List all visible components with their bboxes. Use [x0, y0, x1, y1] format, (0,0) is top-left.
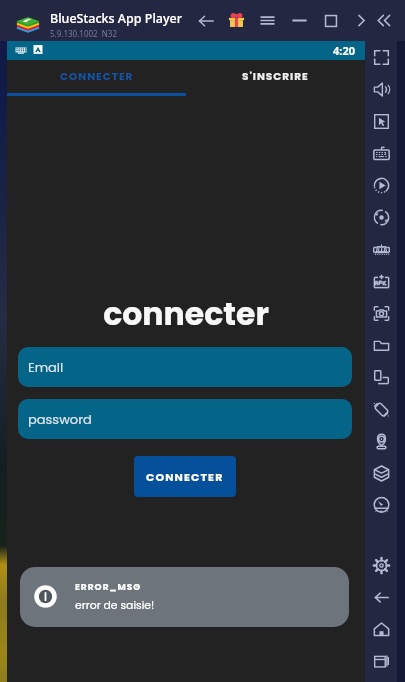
button[interactable]: Email: [18, 347, 352, 387]
staticText: 4:20: [333, 43, 355, 58]
staticText: connecter: [103, 292, 269, 336]
staticText: password: [28, 410, 92, 428]
staticText: error de saisie!: [75, 598, 155, 613]
button[interactable]: Maximize: [316, 0, 346, 41]
button[interactable]: S'INSCRIRE: [186, 60, 365, 93]
button[interactable]: Fullscreen: [365, 41, 397, 73]
button[interactable]: Back: [365, 581, 397, 613]
staticText: CONNECTER: [146, 469, 224, 484]
button[interactable]: Layers: [365, 457, 397, 489]
button[interactable]: Rotate: [365, 361, 397, 393]
button[interactable]: Rewards: [221, 0, 251, 41]
button[interactable]: Shake: [365, 393, 397, 425]
button[interactable]: Forward: [346, 0, 376, 41]
button[interactable]: Screenshot: [365, 297, 397, 329]
button[interactable]: Media manager: [365, 329, 397, 361]
button[interactable]: Collapse: [367, 0, 397, 41]
staticText: CONNECTER: [60, 69, 134, 84]
button[interactable]: Macro: [365, 169, 397, 201]
button[interactable]: Multi instance: [365, 233, 397, 265]
button[interactable]: Minimize: [284, 0, 314, 41]
button[interactable]: Recents: [365, 645, 397, 677]
button[interactable]: password: [18, 399, 352, 439]
button[interactable]: Back: [191, 0, 221, 41]
button[interactable]: CONNECTER: [134, 456, 236, 497]
button[interactable]: Settings: [365, 549, 397, 581]
button[interactable]: Home: [365, 613, 397, 645]
staticText: ERROR_MSG: [75, 581, 142, 594]
button[interactable]: Cursor: [365, 105, 397, 137]
button[interactable]: Menu: [252, 0, 282, 41]
button[interactable]: Location: [365, 425, 397, 457]
staticText: 5.9.130.1002 N32: [50, 28, 118, 39]
button[interactable]: Volume: [365, 73, 397, 105]
button[interactable]: ERROR_MSG: [20, 567, 349, 627]
button[interactable]: Record: [365, 201, 397, 233]
staticText: S'INSCRIRE: [242, 69, 309, 84]
staticText: BlueStacks App Player: [50, 10, 182, 27]
button[interactable]: Keyboard controls: [365, 137, 397, 169]
button[interactable]: Performance: [365, 489, 397, 521]
button[interactable]: Install APK: [365, 265, 397, 297]
staticText: Email: [28, 358, 64, 376]
button[interactable]: CONNECTER: [7, 60, 186, 93]
